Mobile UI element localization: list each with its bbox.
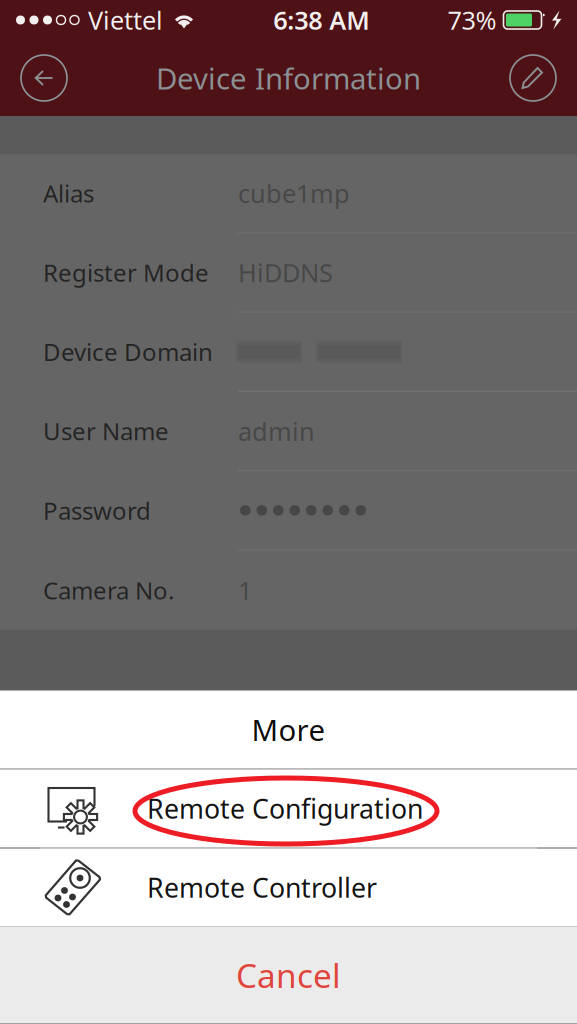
staticText: Password (43, 494, 151, 526)
button[interactable]: Edit (510, 55, 556, 101)
button[interactable]: Cancel (0, 926, 577, 1023)
staticText: Cancel (236, 953, 341, 997)
staticText: Device Information (156, 58, 421, 97)
staticText: Register Mode (43, 256, 209, 288)
staticText: Camera No. (43, 574, 174, 606)
button[interactable]: Alias (0, 154, 577, 233)
staticText: 73% (447, 3, 496, 37)
staticText: HiDDNS (238, 256, 333, 289)
button[interactable]: Remote Controller (0, 848, 577, 926)
staticText: Viettel (88, 3, 163, 37)
button[interactable]: Password (0, 471, 577, 550)
button[interactable]: Camera No. (0, 550, 577, 630)
staticText: admin (238, 414, 315, 448)
button[interactable]: Back (21, 55, 67, 101)
staticText: 6:38 AM (273, 3, 370, 37)
staticText: Device Domain (43, 336, 213, 368)
staticText: cube1mp (238, 176, 350, 210)
button[interactable]: Register Mode (0, 233, 577, 313)
staticText: Remote Controller (147, 870, 377, 905)
staticText: More (251, 710, 325, 749)
staticText: User Name (43, 415, 169, 447)
staticText: 1 (238, 573, 252, 607)
staticText: Remote Configuration (147, 791, 423, 826)
staticText: Alias (43, 177, 94, 209)
button[interactable]: User Name (0, 392, 577, 471)
button[interactable]: Remote Configuration (0, 769, 577, 847)
button[interactable]: Device Domain (0, 313, 577, 392)
